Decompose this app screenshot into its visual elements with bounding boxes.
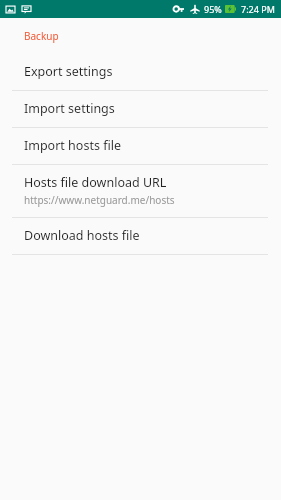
staticText: https://www.netguard.me/hosts xyxy=(24,193,175,207)
staticText: 95% xyxy=(204,3,222,15)
button[interactable]: Import hosts file xyxy=(0,128,281,164)
other: VPN active xyxy=(173,5,184,13)
button[interactable]: Import settings xyxy=(0,91,281,127)
other: Message notification xyxy=(22,5,31,14)
button[interactable]: Export settings xyxy=(0,54,281,90)
other: Airplane mode xyxy=(190,4,200,14)
staticText: Import settings xyxy=(24,100,115,117)
other: Screenshot notification xyxy=(6,5,15,14)
staticText: 7:24 PM xyxy=(241,3,275,15)
staticText: Import hosts file xyxy=(24,137,121,154)
staticText: Export settings xyxy=(24,63,113,80)
staticText: Hosts file download URL xyxy=(24,174,167,191)
staticText: Download hosts file xyxy=(24,227,140,244)
staticText: Backup xyxy=(24,29,59,43)
button[interactable]: Hosts file download URL xyxy=(0,165,281,217)
other: Battery charging 95 percent xyxy=(225,5,236,13)
button[interactable]: Download hosts file xyxy=(0,218,281,254)
